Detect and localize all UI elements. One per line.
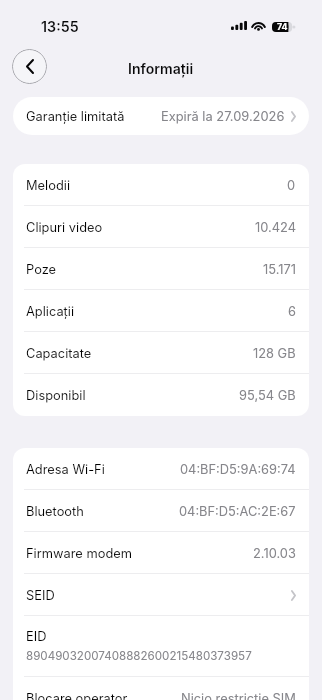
button[interactable]: Back (12, 49, 47, 84)
staticText: Expiră la 27.09.2026 (161, 109, 285, 125)
staticText: 15.171 (263, 262, 296, 278)
staticText: 04:BF:D5:9A:69:74 (180, 462, 296, 478)
staticText: Firmware modem (26, 546, 132, 562)
button[interactable]: Firmware modem (13, 532, 309, 574)
staticText: 6 (288, 304, 296, 320)
staticText: EID (26, 629, 47, 645)
staticText: 74 (277, 21, 288, 32)
staticText: Disponibil (26, 388, 86, 404)
staticText: 13:55 (41, 18, 79, 35)
staticText: Informații (128, 60, 194, 77)
button[interactable]: Disponibil (13, 374, 309, 416)
button[interactable]: Clipuri video (13, 206, 309, 248)
button[interactable]: Poze (13, 248, 309, 290)
button[interactable]: Garanție limitată (13, 97, 309, 135)
staticText: Garanție limitată (26, 109, 125, 125)
staticText: Bluetooth (26, 504, 84, 520)
staticText: Nicio restricție SIM (181, 691, 296, 700)
staticText: 2.10.03 (253, 546, 296, 562)
staticText: Blocare operator (26, 691, 128, 700)
staticText: Aplicații (26, 304, 75, 320)
button[interactable]: Bluetooth (13, 490, 309, 532)
button[interactable]: Blocare operator (13, 677, 309, 700)
staticText: 10.424 (255, 220, 296, 236)
button[interactable]: EID (13, 616, 309, 677)
button[interactable]: Capacitate (13, 332, 309, 374)
button[interactable]: Adresa Wi-Fi (13, 448, 309, 490)
staticText: 0 (287, 178, 296, 194)
staticText: 89049032007408882600215480373957 (26, 649, 252, 663)
staticText: 128 GB (253, 346, 296, 362)
button[interactable]: Aplicații (13, 290, 309, 332)
staticText: Poze (26, 262, 57, 278)
staticText: 04:BF:D5:AC:2E:67 (179, 504, 296, 520)
staticText: Clipuri video (26, 220, 103, 236)
staticText: SEID (26, 588, 55, 604)
staticText: Melodii (26, 178, 70, 194)
staticText: 95,54 GB (239, 388, 296, 404)
button[interactable]: Melodii (13, 164, 309, 206)
staticText: Adresa Wi-Fi (26, 462, 105, 478)
staticText: Capacitate (26, 346, 92, 362)
button[interactable]: SEID (13, 574, 309, 616)
